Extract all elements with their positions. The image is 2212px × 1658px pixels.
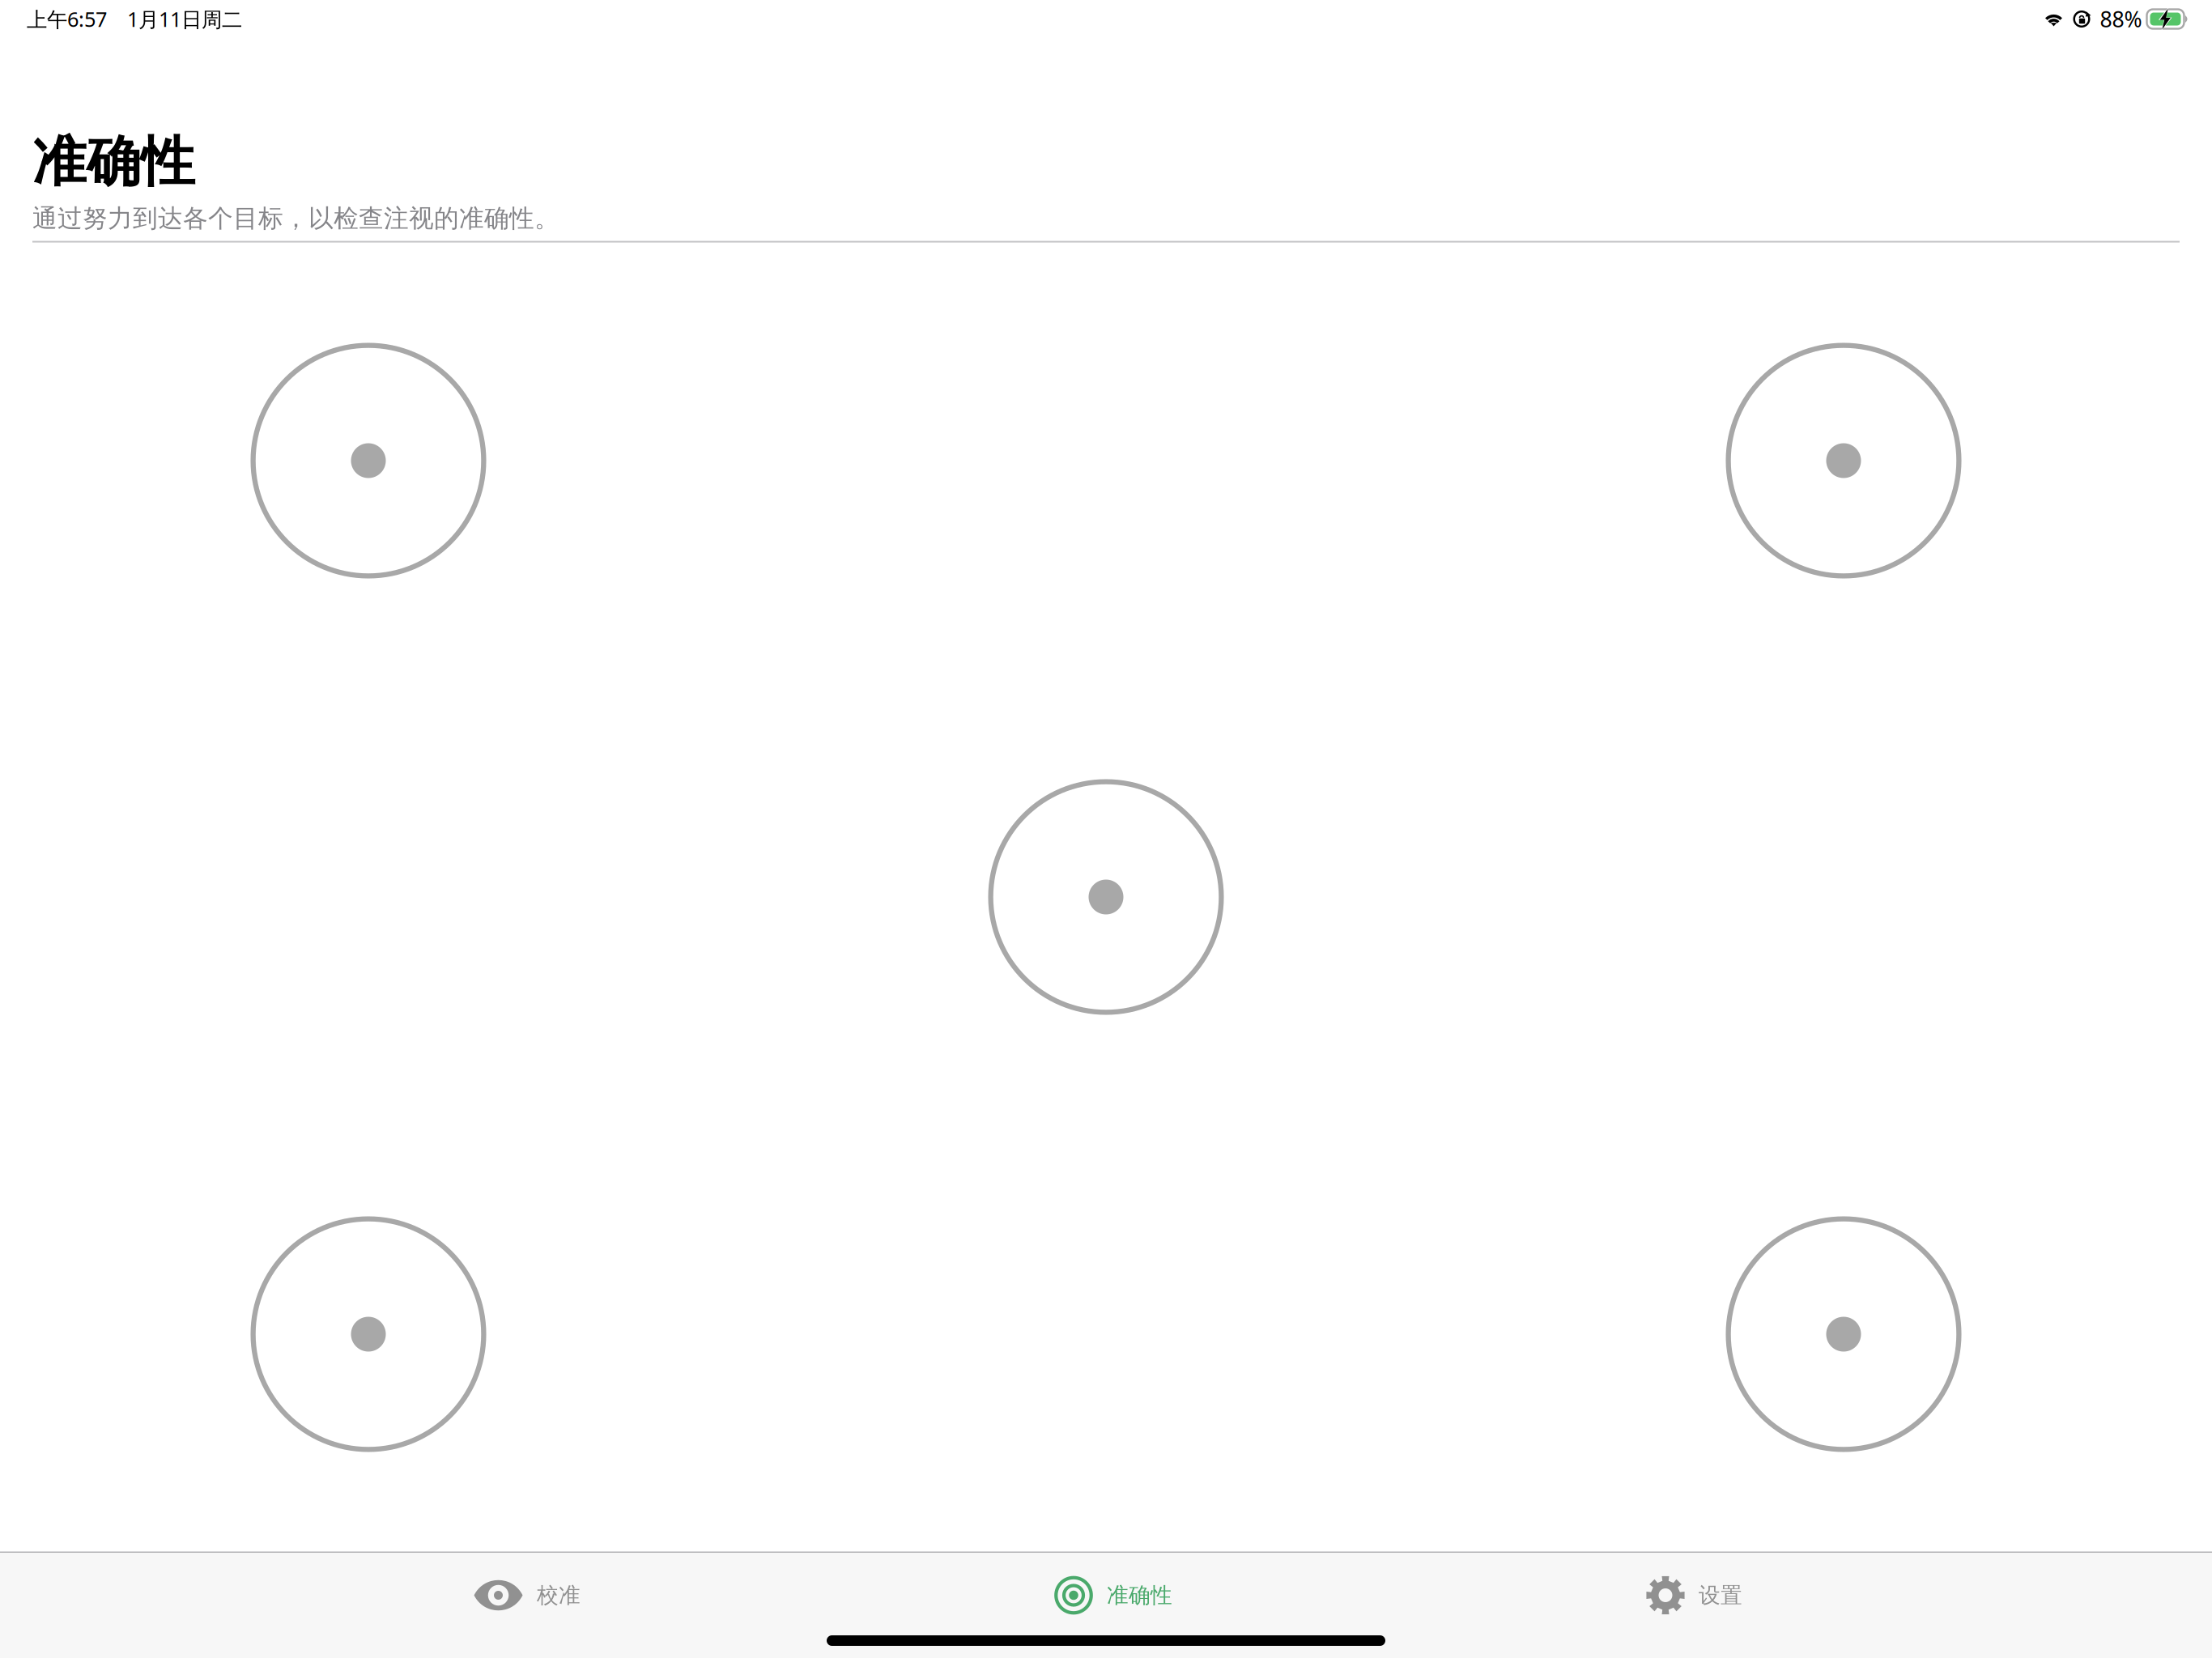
button[interactable]: 校准 bbox=[474, 1553, 581, 1620]
button[interactable]: 中心目标 bbox=[988, 779, 1224, 1015]
button[interactable]: 右上目标 bbox=[1726, 343, 1961, 578]
staticText: 准确性 bbox=[1107, 1582, 1172, 1609]
staticText: 校准 bbox=[537, 1582, 581, 1609]
staticText: 1月11日周二 bbox=[127, 5, 242, 33]
staticText: 设置 bbox=[1699, 1582, 1742, 1609]
button[interactable]: 设置 bbox=[1646, 1553, 1742, 1620]
button[interactable]: 左下目标 bbox=[251, 1216, 486, 1452]
staticText: 88% bbox=[2100, 5, 2142, 33]
button[interactable]: 左上目标 bbox=[251, 343, 486, 578]
staticText: 准确性 bbox=[32, 129, 195, 195]
staticText: 上午6:57 bbox=[27, 5, 107, 33]
staticText: 通过努力到达各个目标，以检查注视的准确性。 bbox=[32, 203, 559, 234]
button[interactable]: 准确性 bbox=[1054, 1553, 1172, 1620]
button[interactable]: 右下目标 bbox=[1726, 1216, 1961, 1452]
